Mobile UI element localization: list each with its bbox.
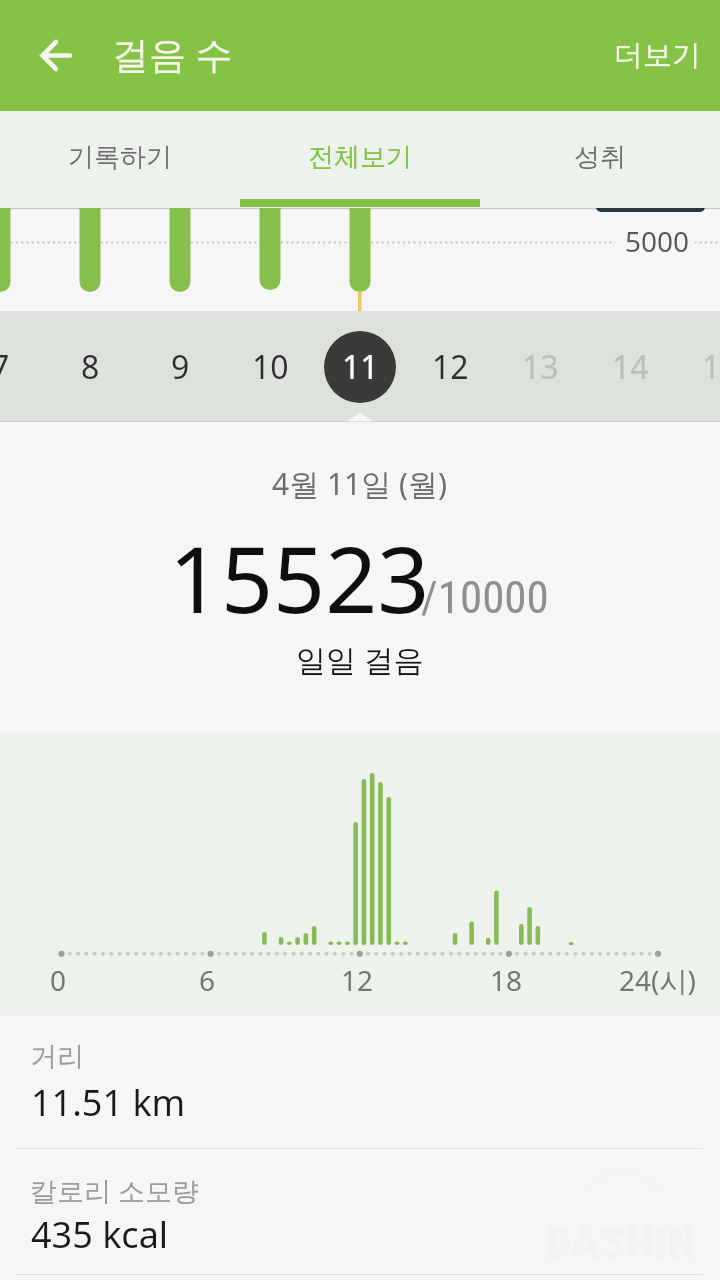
staticText: 13 <box>522 345 559 389</box>
button[interactable]: 칼로리 소모량 <box>0 1149 720 1274</box>
button[interactable]: 14 <box>585 322 675 412</box>
button[interactable]: 기록하기 <box>0 111 240 208</box>
staticText: 24(시) <box>619 961 696 999</box>
staticText: 4월 11일 (월) <box>272 463 448 504</box>
button[interactable]: 8 <box>45 322 135 412</box>
button[interactable]: 11 <box>315 322 405 412</box>
button[interactable]: 15 <box>675 322 720 412</box>
staticText: 435 kcal <box>31 1210 169 1259</box>
staticText: 기록하기 <box>68 141 172 174</box>
button[interactable]: 전체보기 <box>240 111 480 208</box>
staticText: 더보기 <box>614 37 701 74</box>
button[interactable]: 9 <box>135 322 225 412</box>
staticText: 6 <box>199 961 216 999</box>
staticText: 10 <box>252 345 289 389</box>
staticText: 걸음 수 <box>112 28 233 79</box>
staticText: 12 <box>432 345 469 389</box>
button[interactable]: 10 <box>225 322 315 412</box>
staticText: 9 <box>171 345 190 389</box>
button[interactable]: Back <box>24 24 88 88</box>
button[interactable]: 13 <box>495 322 585 412</box>
staticText: 12 <box>341 961 374 999</box>
staticText: 8 <box>81 345 100 389</box>
staticText: 15 <box>702 345 720 389</box>
staticText: /10000 <box>421 571 549 624</box>
staticText: 18 <box>490 961 523 999</box>
staticText: 거리 <box>30 1040 84 1074</box>
staticText: 5000 <box>625 222 690 260</box>
staticText: 일일 걸음 <box>296 639 424 680</box>
staticText: 전체보기 <box>308 141 412 174</box>
staticText: 성취 <box>574 141 626 174</box>
staticText: 14 <box>612 345 649 389</box>
button[interactable]: 거리 <box>0 1016 720 1148</box>
button[interactable]: 12 <box>405 322 495 412</box>
button[interactable]: 5000 <box>0 208 720 311</box>
staticText: 15523 <box>169 516 430 640</box>
button[interactable]: 더보기 <box>589 21 720 90</box>
button[interactable]: 7 <box>0 322 45 412</box>
staticText: 11.51 km <box>31 1078 186 1127</box>
staticText: 칼로리 소모량 <box>30 1172 200 1209</box>
staticText: 0 <box>50 961 67 999</box>
button[interactable]: 성취 <box>480 111 720 208</box>
staticText: 7 <box>0 345 10 389</box>
staticText: 11 <box>342 345 379 389</box>
